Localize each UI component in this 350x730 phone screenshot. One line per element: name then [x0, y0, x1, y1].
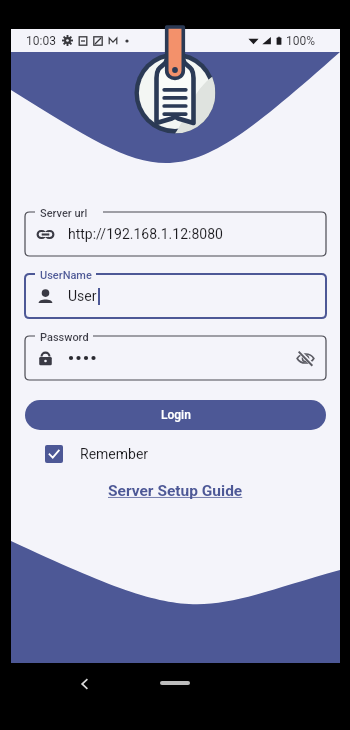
staticText: Password [40, 331, 89, 344]
button[interactable]: Login [25, 400, 326, 430]
staticText: Login [161, 408, 191, 422]
staticText: 10:03 [26, 34, 56, 48]
button[interactable]: User [25, 274, 326, 318]
staticText: Server url [40, 207, 88, 220]
staticText: 100% [286, 34, 316, 48]
button[interactable]: Remember [45, 445, 149, 463]
staticText: UserName [40, 269, 92, 282]
staticText: Remember [80, 446, 149, 462]
button[interactable]: Server Setup Guide [104, 480, 247, 502]
button[interactable]: http://192.168.1.12:8080 [25, 212, 326, 256]
button[interactable]: Show password [25, 336, 326, 380]
staticText: User [68, 288, 97, 304]
staticText: http://192.168.1.12:8080 [68, 226, 223, 242]
button[interactable]: Back [73, 672, 97, 696]
button[interactable]: Show password [294, 347, 316, 369]
button[interactable]: Home [160, 681, 190, 685]
